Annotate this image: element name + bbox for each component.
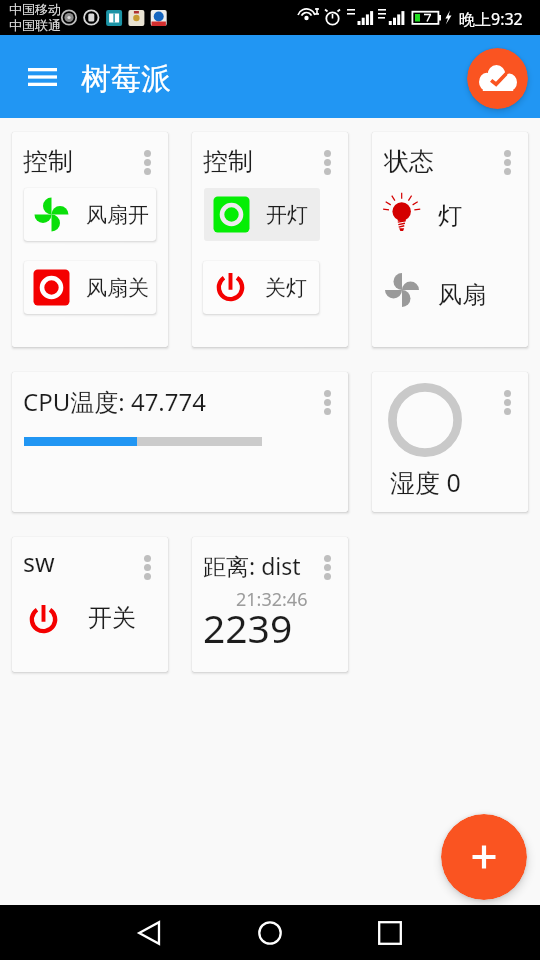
- button[interactable]: Menu: [18, 57, 66, 97]
- button[interactable]: More options: [130, 548, 164, 586]
- button[interactable]: Home: [210, 905, 330, 960]
- staticText: 灯: [438, 201, 462, 231]
- staticText: 控制: [203, 146, 253, 177]
- staticText: 中国联通: [9, 17, 61, 33]
- button[interactable]: 风扇关: [24, 261, 156, 314]
- button[interactable]: More options: [490, 383, 524, 421]
- staticText: 关灯: [265, 275, 307, 301]
- button[interactable]: Cloud upload status: [467, 48, 528, 109]
- staticText: 2239: [203, 601, 293, 654]
- staticText: 晚上9:32: [459, 8, 523, 30]
- button[interactable]: 风扇开: [24, 188, 156, 241]
- staticText: 中国移动: [9, 1, 61, 17]
- button[interactable]: 开灯: [204, 188, 320, 241]
- button[interactable]: More options: [310, 548, 344, 586]
- staticText: 开灯: [266, 202, 308, 228]
- button[interactable]: 关灯: [203, 261, 319, 314]
- button[interactable]: More options: [130, 143, 164, 181]
- staticText: 距离: dist: [203, 550, 301, 581]
- button[interactable]: More options: [490, 143, 524, 181]
- staticText: 风扇开: [86, 202, 149, 228]
- staticText: 状态: [384, 146, 434, 177]
- staticText: 开关: [88, 603, 136, 633]
- staticText: CPU温度: 47.774: [23, 385, 206, 418]
- staticText: 风扇: [438, 280, 486, 310]
- button[interactable]: Back: [90, 905, 210, 960]
- button[interactable]: Add: [441, 814, 527, 900]
- staticText: 湿度 0: [390, 465, 461, 499]
- button[interactable]: Recent apps: [330, 905, 450, 960]
- staticText: 风扇关: [86, 275, 149, 301]
- staticText: 21:32:46: [236, 587, 308, 612]
- button[interactable]: More options: [310, 143, 344, 181]
- staticText: sw: [23, 545, 55, 579]
- staticText: 控制: [23, 146, 73, 177]
- staticText: 树莓派: [81, 60, 171, 98]
- button[interactable]: More options: [310, 383, 344, 421]
